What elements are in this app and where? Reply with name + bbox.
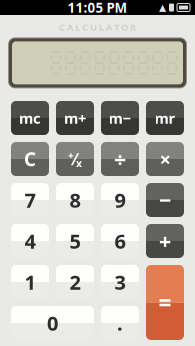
staticText: 5 bbox=[69, 228, 80, 254]
button[interactable]: mr bbox=[146, 101, 184, 135]
staticText: . bbox=[117, 310, 123, 336]
button[interactable]: C bbox=[11, 142, 49, 176]
button[interactable]: mc bbox=[11, 101, 49, 135]
staticText: + bbox=[159, 227, 171, 255]
staticText: 2 bbox=[69, 269, 80, 295]
button[interactable]: + bbox=[146, 224, 184, 258]
button[interactable]: m− bbox=[101, 101, 139, 135]
staticText: 11:05 PM bbox=[67, 0, 127, 16]
staticText: 0 bbox=[47, 310, 58, 336]
button[interactable]: ⁺⁄ₓ bbox=[56, 142, 94, 176]
button[interactable]: 5 bbox=[56, 224, 94, 258]
staticText: m− bbox=[108, 108, 131, 128]
staticText: ÷ bbox=[114, 145, 126, 173]
button[interactable]: 1 bbox=[11, 265, 49, 299]
button[interactable]: 3 bbox=[101, 265, 139, 299]
staticText: ⁺⁄ₓ bbox=[68, 148, 82, 170]
button[interactable]: 8 bbox=[56, 183, 94, 217]
button[interactable]: × bbox=[146, 142, 184, 176]
button[interactable]: 0 bbox=[11, 306, 94, 340]
staticText: 1 bbox=[24, 269, 35, 295]
button[interactable]: 9 bbox=[101, 183, 139, 217]
staticText: − bbox=[159, 186, 171, 214]
button[interactable]: − bbox=[146, 183, 184, 217]
staticText: mr bbox=[154, 108, 175, 128]
staticText: 6 bbox=[114, 228, 125, 254]
button[interactable]: 7 bbox=[11, 183, 49, 217]
button[interactable]: 6 bbox=[101, 224, 139, 258]
staticText: mc bbox=[19, 108, 41, 128]
button[interactable]: 2 bbox=[56, 265, 94, 299]
button[interactable]: ÷ bbox=[101, 142, 139, 176]
button[interactable]: m+ bbox=[56, 101, 94, 135]
staticText: C A L C U L A T O R bbox=[59, 21, 136, 33]
button[interactable]: . bbox=[101, 306, 139, 340]
staticText: × bbox=[159, 146, 170, 172]
staticText: m+ bbox=[64, 108, 86, 128]
staticText: 8 bbox=[69, 187, 80, 213]
staticText: 9 bbox=[114, 187, 125, 213]
staticText: C bbox=[24, 147, 36, 171]
button[interactable]: = bbox=[146, 265, 184, 340]
button[interactable]: 4 bbox=[11, 224, 49, 258]
staticText: 3 bbox=[114, 269, 125, 295]
staticText: 4 bbox=[24, 228, 35, 254]
staticText: ▲ bbox=[159, 2, 166, 13]
staticText: 7 bbox=[24, 187, 35, 213]
staticText: = bbox=[158, 287, 171, 317]
